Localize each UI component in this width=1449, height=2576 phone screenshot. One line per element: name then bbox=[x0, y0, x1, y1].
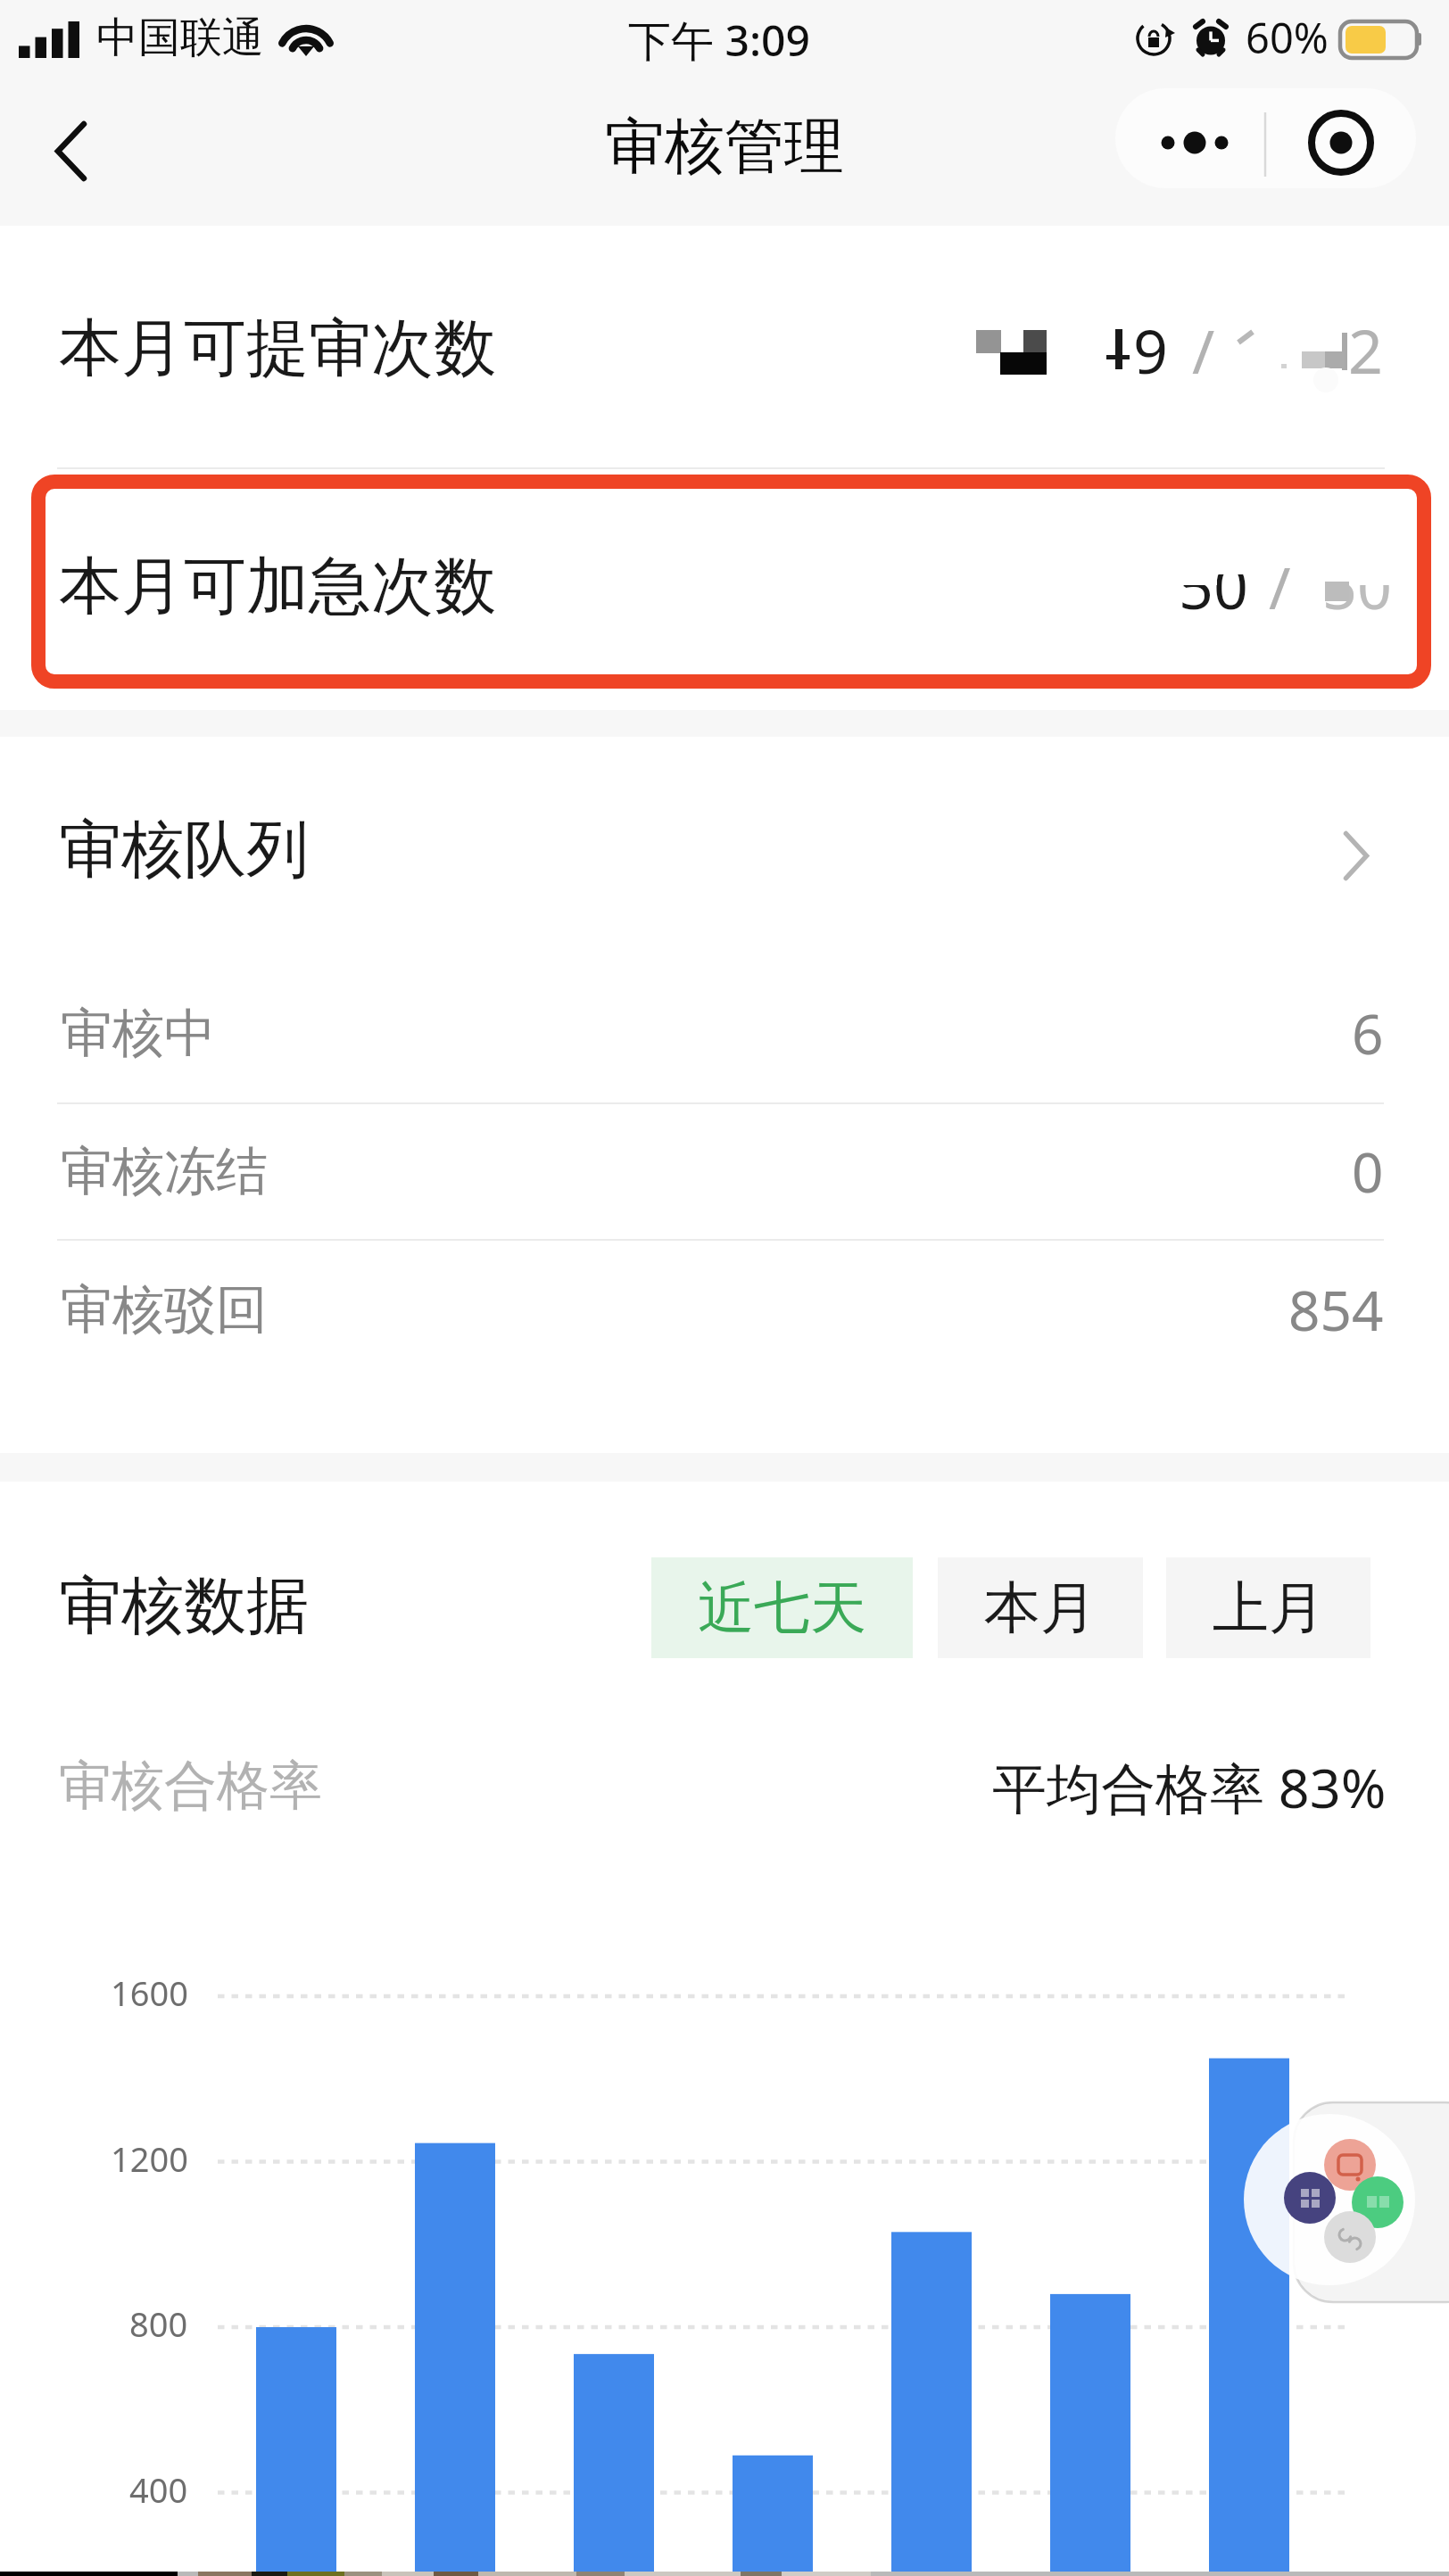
staticText: / bbox=[1192, 309, 1215, 392]
staticText: 60% bbox=[1246, 9, 1329, 66]
staticText: 400 bbox=[129, 2466, 188, 2513]
staticText: 审核队列 bbox=[59, 811, 309, 889]
staticText: 审核驳回 bbox=[61, 1277, 268, 1342]
staticText: 6 bbox=[1352, 995, 1384, 1070]
staticText: 50 bbox=[1322, 544, 1392, 627]
button[interactable]: 审核冻结 bbox=[0, 1101, 1449, 1242]
staticText: 本月 bbox=[984, 1573, 1097, 1643]
staticText: 下午 3:09 bbox=[628, 11, 810, 70]
staticText: 上月 bbox=[1213, 1573, 1325, 1643]
staticText: 50 bbox=[1179, 544, 1248, 627]
staticText: 9 bbox=[1133, 309, 1168, 392]
button[interactable]: 审核中 bbox=[0, 962, 1449, 1103]
staticText: 0 bbox=[1352, 1134, 1384, 1209]
staticText: 审核管理 bbox=[605, 109, 844, 184]
staticText: 平均合格率 83% bbox=[992, 1750, 1387, 1824]
staticText: 本月可加急次数 bbox=[59, 548, 496, 626]
button[interactable]: 本月可加急次数 bbox=[0, 474, 1449, 700]
staticText: 近七天 bbox=[698, 1573, 866, 1643]
staticText: 审核中 bbox=[61, 1001, 216, 1066]
staticText: 12 bbox=[1313, 309, 1383, 392]
button[interactable]: 本月 bbox=[938, 1557, 1143, 1658]
button[interactable]: 近七天 bbox=[651, 1557, 913, 1658]
staticText: 本月可提审次数 bbox=[59, 310, 496, 388]
button[interactable]: 分享到其他应用 bbox=[1231, 2087, 1449, 2319]
button[interactable]: 返回 bbox=[28, 108, 113, 194]
button[interactable]: 审核驳回 bbox=[0, 1239, 1449, 1380]
button[interactable]: 更多功能 bbox=[1115, 88, 1416, 188]
button[interactable]: 本月可提审次数 bbox=[0, 235, 1449, 462]
button[interactable]: 审核队列 bbox=[0, 761, 1449, 939]
staticText: 1200 bbox=[111, 2135, 188, 2182]
staticText: / bbox=[1269, 544, 1292, 627]
staticText: 854 bbox=[1288, 1272, 1384, 1347]
staticText: 审核合格率 bbox=[59, 1753, 322, 1819]
staticText: 800 bbox=[129, 2300, 188, 2347]
button[interactable]: 上月 bbox=[1166, 1557, 1370, 1658]
staticText: 1600 bbox=[111, 1969, 188, 2016]
staticText: 审核数据 bbox=[59, 1567, 309, 1646]
staticText: 中国联通 bbox=[96, 12, 264, 64]
staticText: 审核冻结 bbox=[61, 1139, 268, 1204]
